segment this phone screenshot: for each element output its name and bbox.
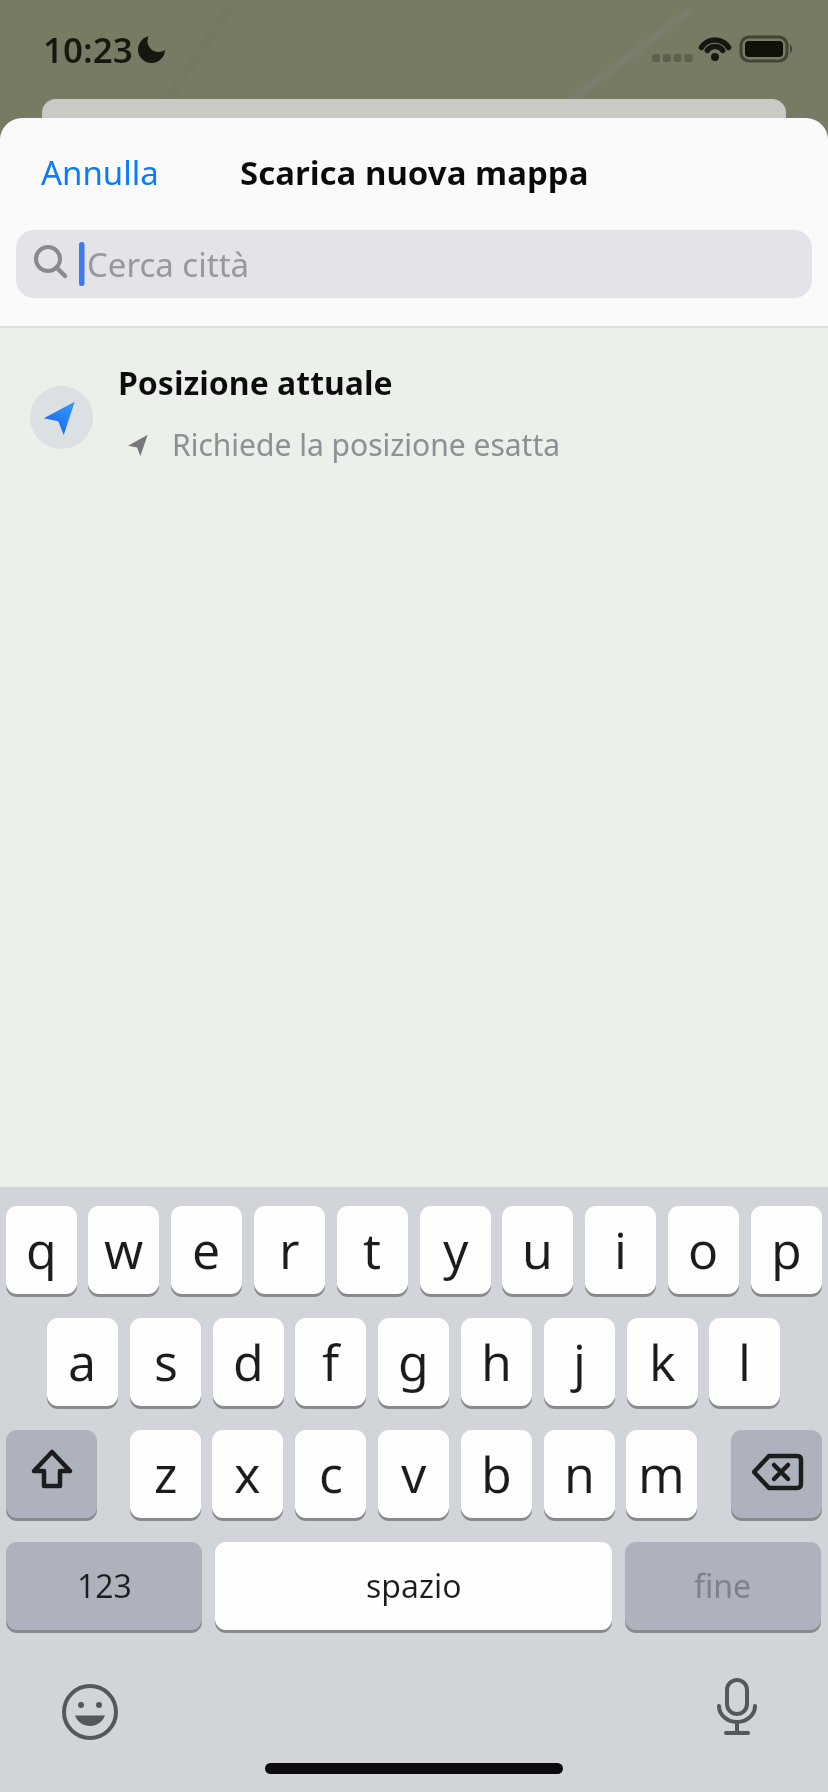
staticText: c xyxy=(319,1440,343,1508)
button[interactable]: Annulla xyxy=(30,140,170,204)
staticText: Annulla xyxy=(41,150,159,195)
button[interactable]: Cerca città xyxy=(16,230,812,298)
staticText: Cerca città xyxy=(87,242,250,287)
staticText: i xyxy=(614,1216,627,1284)
staticText: l xyxy=(738,1328,751,1396)
button[interactable]: h xyxy=(461,1318,532,1406)
button[interactable]: c xyxy=(295,1430,366,1518)
staticText: x xyxy=(234,1440,261,1508)
button[interactable] xyxy=(6,1430,97,1518)
staticText: f xyxy=(322,1328,340,1396)
staticText: Scarica nuova mappa xyxy=(240,150,589,195)
button[interactable]: o xyxy=(668,1206,739,1294)
button[interactable]: m xyxy=(626,1430,697,1518)
staticText: m xyxy=(638,1440,685,1508)
staticText: b xyxy=(481,1440,512,1508)
button[interactable]: r xyxy=(254,1206,325,1294)
staticText: u xyxy=(522,1216,553,1284)
button[interactable]: i xyxy=(585,1206,656,1294)
button[interactable] xyxy=(58,1680,122,1744)
staticText: n xyxy=(564,1440,595,1508)
button[interactable]: p xyxy=(751,1206,822,1294)
button[interactable]: j xyxy=(544,1318,615,1406)
button[interactable]: f xyxy=(295,1318,366,1406)
button[interactable]: e xyxy=(171,1206,242,1294)
staticText: Richiede la posizione esatta xyxy=(172,424,561,465)
button[interactable] xyxy=(707,1676,767,1748)
staticText: w xyxy=(104,1216,144,1284)
button[interactable]: 123 xyxy=(6,1542,202,1630)
staticText: Posizione attuale xyxy=(118,361,393,405)
button[interactable]: x xyxy=(212,1430,283,1518)
button[interactable]: v xyxy=(378,1430,449,1518)
staticText: spazio xyxy=(366,1564,462,1608)
button[interactable]: z xyxy=(130,1430,201,1518)
staticText: a xyxy=(68,1328,97,1396)
button[interactable] xyxy=(731,1430,822,1518)
staticText: s xyxy=(154,1328,178,1396)
staticText: z xyxy=(154,1440,178,1508)
button[interactable]: fine xyxy=(625,1542,821,1630)
staticText: y xyxy=(443,1216,469,1284)
button[interactable]: k xyxy=(627,1318,698,1406)
button[interactable]: w xyxy=(88,1206,159,1294)
button[interactable]: b xyxy=(461,1430,532,1518)
staticText: p xyxy=(771,1216,802,1284)
button[interactable]: n xyxy=(544,1430,615,1518)
button[interactable]: q xyxy=(6,1206,77,1294)
staticText: d xyxy=(233,1328,264,1396)
staticText: 10:23 xyxy=(43,26,133,74)
staticText: j xyxy=(573,1328,586,1396)
button[interactable]: l xyxy=(709,1318,780,1406)
button[interactable]: u xyxy=(502,1206,573,1294)
button[interactable]: d xyxy=(213,1318,284,1406)
button[interactable]: a xyxy=(47,1318,118,1406)
button[interactable]: s xyxy=(130,1318,201,1406)
staticText: v xyxy=(401,1440,427,1508)
staticText: h xyxy=(481,1328,512,1396)
staticText: e xyxy=(192,1216,221,1284)
staticText: 123 xyxy=(77,1564,132,1608)
button[interactable]: g xyxy=(378,1318,449,1406)
staticText: k xyxy=(649,1328,676,1396)
staticText: fine xyxy=(694,1564,752,1608)
staticText: o xyxy=(688,1216,719,1284)
button[interactable]: y xyxy=(420,1206,491,1294)
button[interactable]: t xyxy=(337,1206,408,1294)
button[interactable]: spazio xyxy=(215,1542,612,1630)
button[interactable]: Posizione attuale xyxy=(0,356,828,472)
staticText: r xyxy=(279,1216,300,1284)
staticText: t xyxy=(363,1216,382,1284)
staticText: g xyxy=(398,1328,429,1396)
staticText: q xyxy=(26,1216,57,1284)
